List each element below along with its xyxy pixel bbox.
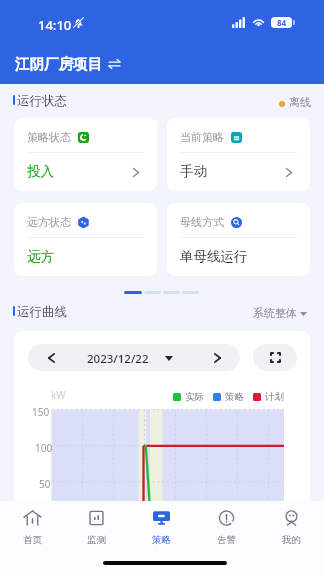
button[interactable]: 离线 xyxy=(279,97,311,111)
staticText: 远方状态 xyxy=(27,215,71,229)
staticText: 50 xyxy=(39,477,51,491)
other: Previous day xyxy=(48,353,55,363)
other: Next day xyxy=(214,353,221,363)
button[interactable]: Previous day xyxy=(28,344,240,371)
button[interactable]: 母线方式 xyxy=(167,203,310,276)
button[interactable]: 江阴厂房项目 xyxy=(14,52,122,76)
staticText: 当前策略 xyxy=(180,130,224,144)
staticText: 150 xyxy=(32,405,50,419)
button[interactable]: 策略状态 xyxy=(14,118,157,191)
staticText: 策略 xyxy=(225,391,244,403)
staticText: 实际 xyxy=(185,391,204,403)
staticText: 监测 xyxy=(87,534,106,546)
staticText: 运行状态 xyxy=(17,93,67,109)
staticText: 100 xyxy=(35,441,53,455)
staticText: 我的 xyxy=(282,534,301,546)
staticText: 84 xyxy=(277,17,287,28)
button[interactable]: 远方状态 xyxy=(14,203,157,276)
staticText: 投入 xyxy=(27,163,54,180)
button[interactable]: 策略 xyxy=(129,501,194,551)
staticText: 策略 xyxy=(152,534,171,546)
staticText: 首页 xyxy=(23,534,42,546)
button[interactable]: Fullscreen xyxy=(253,344,297,371)
staticText: 告警 xyxy=(217,534,236,546)
button[interactable]: 告警 xyxy=(194,501,259,551)
button[interactable]: 系统整体 xyxy=(253,306,307,320)
staticText: 系统整体 xyxy=(253,306,297,320)
staticText: 策略状态 xyxy=(27,130,71,144)
button[interactable]: 当前策略 xyxy=(167,118,310,191)
staticText: kW xyxy=(51,388,66,402)
staticText: 手动 xyxy=(180,163,207,180)
button[interactable]: 首页 xyxy=(0,501,64,551)
staticText: 运行曲线 xyxy=(17,304,67,320)
staticText: 2023/12/22 xyxy=(87,351,149,367)
staticText: 远方 xyxy=(27,248,54,265)
staticText: 江阴厂房项目 xyxy=(15,55,102,73)
staticText: 离线 xyxy=(289,95,311,109)
staticText: 单母线运行 xyxy=(180,248,248,265)
button[interactable]: 监测 xyxy=(64,501,129,551)
button[interactable]: 我的 xyxy=(259,501,324,551)
staticText: 14:10 xyxy=(38,16,72,34)
staticText: 计划 xyxy=(265,391,284,403)
staticText: 母线方式 xyxy=(180,215,224,229)
